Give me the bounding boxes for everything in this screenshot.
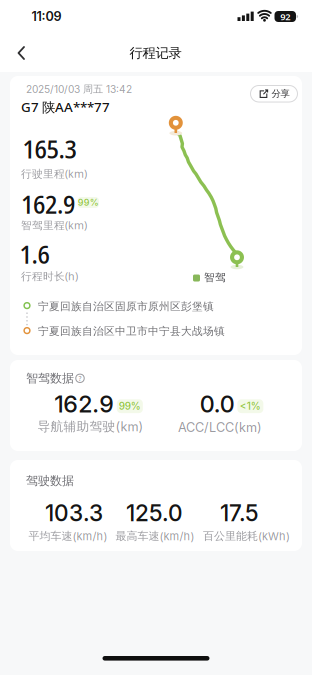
staticText: 162.9 [21,186,75,221]
staticText: 智驾里程(km) [21,218,87,232]
staticText: G7 陕AA***77 [21,98,110,116]
staticText: 99% [78,197,99,208]
button[interactable]: 智驾数据说明 [74,372,86,384]
staticText: 导航辅助驾驶(km) [37,418,143,434]
staticText: 分享 [271,88,289,99]
staticText: 0.0 [200,390,235,418]
staticText: 行程记录 [129,45,181,61]
staticText: 百公里能耗(kWh) [203,529,290,543]
staticText: 行驶里程(km) [21,166,87,181]
staticText: 平均车速(km/h) [28,529,107,543]
staticText: ? [78,374,81,383]
staticText: 驾驶数据 [26,473,74,488]
staticText: 17.5 [220,499,259,527]
staticText: 125.0 [126,499,183,527]
button[interactable]: 分享 [250,85,297,102]
staticText: 162.9 [54,390,114,418]
staticText: 103.3 [45,499,103,527]
staticText: 165.3 [22,131,76,166]
staticText: 92 [280,10,290,23]
staticText: 99% [119,400,141,412]
staticText: 宁夏回族自治区固原市原州区彭堡镇 [38,300,214,313]
staticText: 行程时长(h) [21,269,78,283]
staticText: 智驾数据 [26,371,74,385]
staticText: 最高车速(km/h) [115,529,194,543]
staticText: <1% [240,400,261,412]
staticText: 宁夏回族自治区中卫市中宁县大战场镇 [38,325,225,338]
staticText: 1.6 [19,236,49,271]
staticText: 11:09 [31,9,61,24]
staticText: ACC/LCC(km) [178,420,262,435]
button[interactable]: Back [6,43,42,63]
staticText: 2025/10/03 周五 13:42 [26,83,132,96]
staticText: 智驾 [204,271,226,284]
